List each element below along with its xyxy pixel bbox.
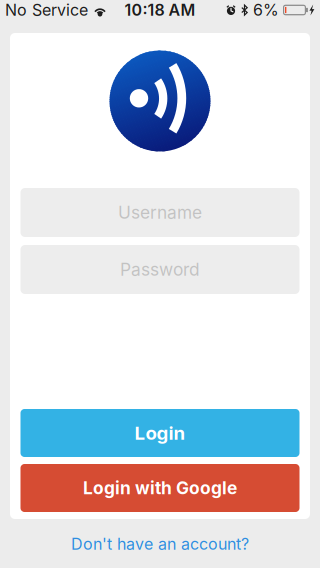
staticText: Username — [118, 202, 202, 223]
staticText: Login with Google — [83, 477, 237, 498]
staticText: Password — [120, 259, 200, 280]
button[interactable]: Password — [20, 245, 299, 294]
staticText: Don't have an account? — [71, 534, 249, 554]
staticText: 10:18 AM — [124, 0, 195, 20]
button[interactable]: Don't have an account? — [50, 532, 270, 556]
staticText: Login — [134, 422, 185, 444]
button[interactable]: Username — [20, 188, 299, 237]
staticText: 6% — [253, 0, 279, 20]
button[interactable]: Login — [20, 409, 299, 457]
staticText: No Service — [5, 0, 88, 20]
button[interactable]: Login with Google — [20, 464, 299, 512]
